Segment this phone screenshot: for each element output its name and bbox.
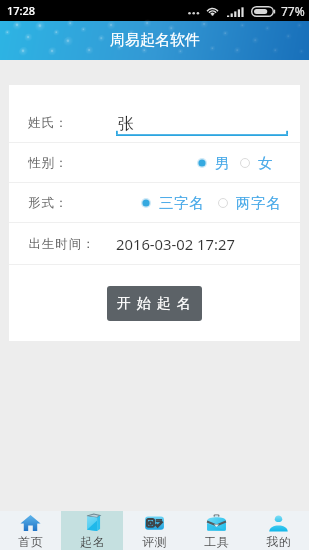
staticText: 开始起名: [117, 295, 197, 313]
button[interactable]: 两字名: [218, 190, 282, 216]
button[interactable]: 起名: [61, 511, 123, 550]
button[interactable]: 工具: [185, 511, 247, 550]
staticText: 77%: [281, 3, 305, 19]
staticText: 17:28: [7, 3, 36, 18]
staticText: 起名: [80, 534, 105, 549]
button[interactable]: 评测: [123, 511, 185, 550]
button[interactable]: 男: [197, 150, 231, 176]
staticText: 形式：: [28, 195, 69, 211]
staticText: 张: [118, 114, 134, 134]
button[interactable]: 开始起名: [107, 286, 202, 321]
staticText: 性别：: [28, 155, 69, 171]
staticText: 出生时间：: [28, 236, 95, 252]
button[interactable]: 首页: [0, 511, 61, 550]
staticText: 工具: [204, 534, 229, 549]
staticText: 评测: [142, 534, 167, 549]
staticText: 我的: [266, 534, 291, 549]
staticText: 首页: [18, 534, 43, 549]
staticText: 三字名: [159, 194, 205, 212]
button[interactable]: 三字名: [141, 190, 205, 216]
staticText: 男: [215, 154, 231, 172]
staticText: 周易起名软件: [110, 31, 200, 50]
button[interactable]: 我的: [247, 511, 309, 550]
button[interactable]: 女: [240, 150, 274, 176]
staticText: 姓氏：: [28, 115, 69, 131]
staticText: 女: [258, 154, 274, 172]
staticText: 两字名: [236, 194, 282, 212]
staticText: 2016-03-02 17:27: [116, 234, 235, 254]
